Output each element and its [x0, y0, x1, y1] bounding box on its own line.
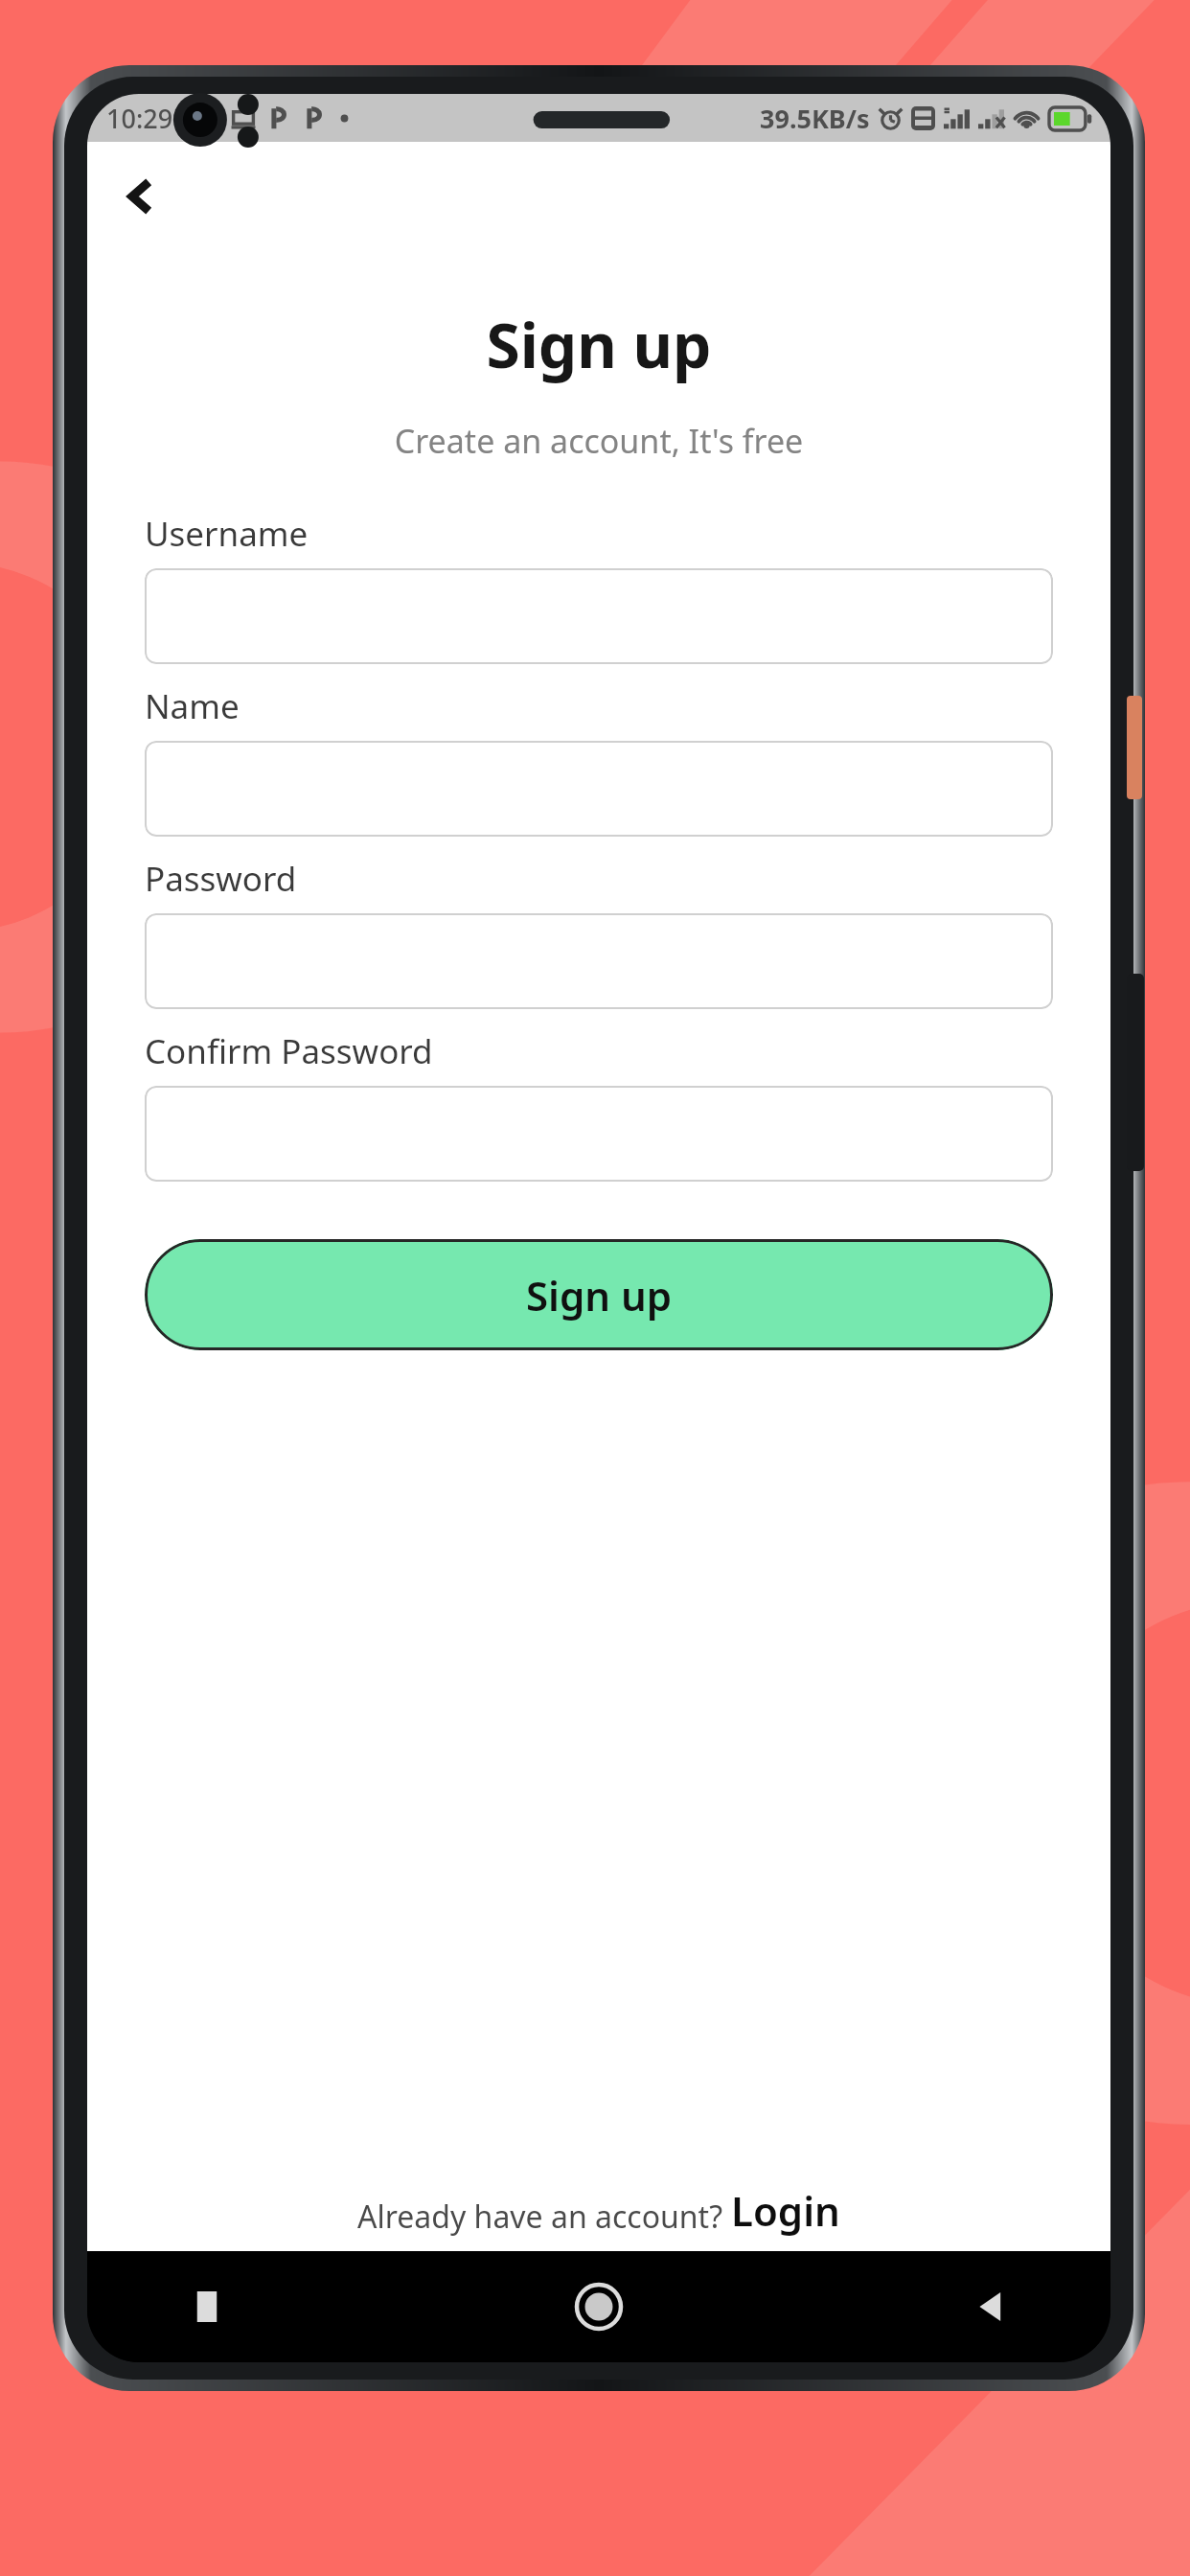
staticText: Confirm Password	[145, 1028, 433, 1074]
button[interactable]	[145, 741, 1053, 837]
button[interactable]: Already have an account?	[87, 2183, 1110, 2251]
button[interactable]: Back	[948, 2264, 1034, 2350]
staticText: 10:29 PM	[106, 101, 219, 136]
button[interactable]: Home	[556, 2264, 642, 2350]
button[interactable]	[145, 1086, 1053, 1182]
staticText: Sign up	[526, 1268, 673, 1322]
staticText: Password	[145, 856, 297, 902]
button[interactable]	[145, 568, 1053, 664]
staticText: Username	[145, 511, 309, 557]
button[interactable]: Recents	[164, 2264, 250, 2350]
staticText: Sign up	[87, 303, 1110, 386]
staticText: 39.5KB/s	[760, 101, 870, 136]
staticText: Name	[145, 683, 240, 729]
staticText: Login	[731, 2183, 840, 2238]
staticText: Already have an account?	[357, 2196, 731, 2238]
button[interactable]	[145, 913, 1053, 1009]
button[interactable]: Back	[106, 161, 177, 232]
button[interactable]: Sign up	[145, 1239, 1053, 1350]
staticText: Create an account, It's free	[87, 419, 1110, 463]
